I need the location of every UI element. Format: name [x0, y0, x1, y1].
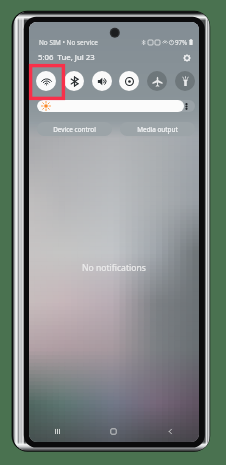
button[interactable]: Airplane mode: [147, 71, 167, 91]
button[interactable]: Brightness: [37, 100, 195, 112]
staticText: No SIM • No service: [39, 38, 98, 47]
staticText: No notifications: [82, 262, 146, 274]
button[interactable]: Media output: [120, 122, 195, 136]
button[interactable]: Wi-Fi: [36, 71, 56, 91]
button[interactable]: Volume: [92, 71, 112, 91]
button[interactable]: Recent apps: [29, 420, 85, 442]
button[interactable]: Auto rotate: [119, 71, 139, 91]
button[interactable]: Back: [142, 420, 199, 442]
button[interactable]: Home: [85, 420, 142, 442]
button[interactable]: Settings: [180, 51, 193, 64]
button[interactable]: Device control: [37, 122, 112, 136]
button[interactable]: Bluetooth: [64, 71, 84, 91]
staticText: Media output: [137, 125, 178, 134]
button[interactable]: Flashlight: [175, 71, 195, 91]
staticText: 97%: [175, 38, 188, 46]
staticText: 5:06 Tue, Jul 23: [38, 52, 95, 63]
staticText: Device control: [53, 125, 96, 134]
